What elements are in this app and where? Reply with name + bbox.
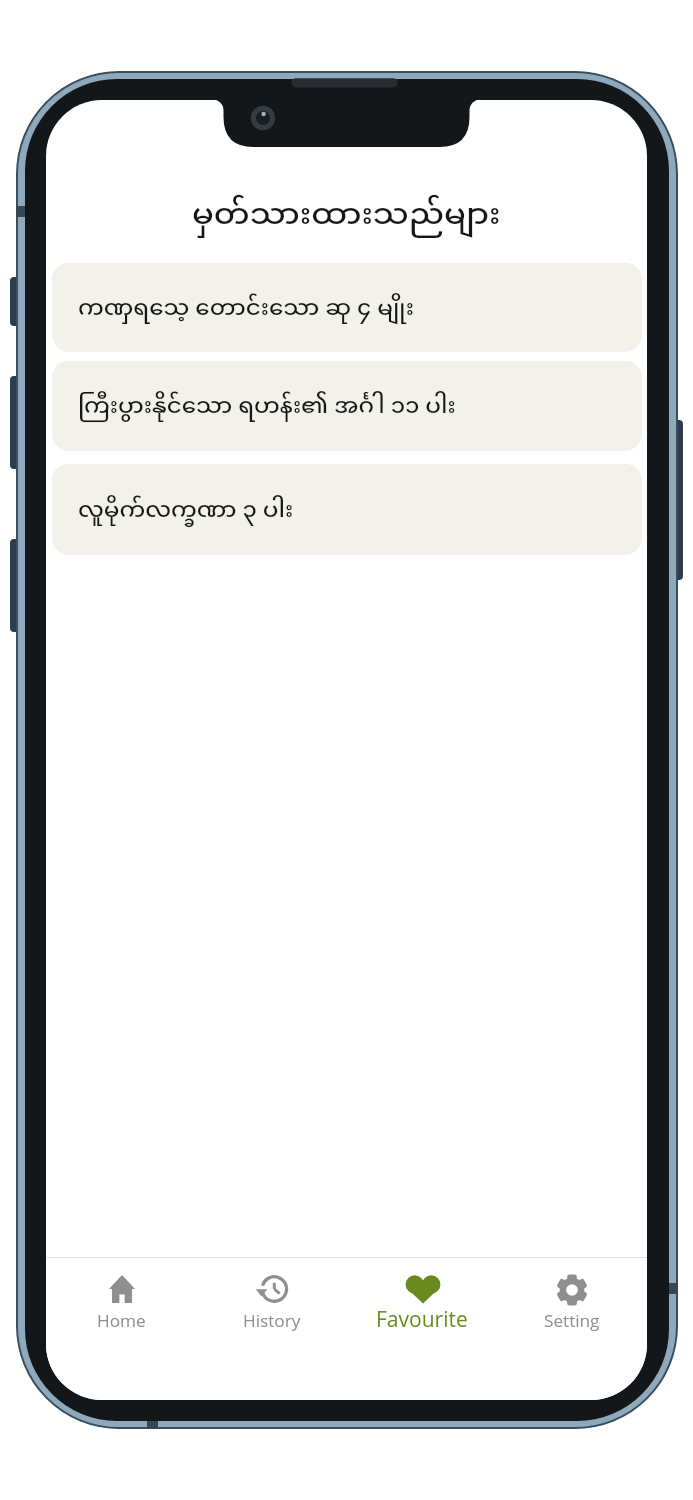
button[interactable]: လူမိုက်လက္ခဏာ ၃ ပါး [52, 464, 642, 553]
button[interactable]: ကြီးပွားနိုင်သော ရဟန်း၏ အင်္ဂါ ၁၁ ပါး [52, 361, 642, 449]
button[interactable]: Home [46, 1258, 197, 1400]
button[interactable]: ကဏှရသေ့ တောင်းသော ဆု ၄ မျိုး [52, 263, 642, 350]
button[interactable]: History [197, 1258, 347, 1400]
staticText: Home [97, 1309, 146, 1332]
staticText: လူမိုက်လက္ခဏာ ၃ ပါး [78, 495, 294, 526]
staticText: Favourite [376, 1305, 468, 1334]
staticText: မှတ်သားထားသည်များ [192, 195, 501, 239]
button[interactable]: Favourite [347, 1258, 497, 1400]
staticText: ကြီးပွားနိုင်သော ရဟန်း၏ အင်္ဂါ ၁၁ ပါး [78, 391, 456, 422]
staticText: History [243, 1309, 301, 1332]
staticText: Setting [544, 1309, 600, 1332]
button[interactable]: Setting [497, 1258, 647, 1400]
staticText: ကဏှရသေ့ တောင်းသော ဆု ၄ မျိုး [78, 293, 415, 324]
